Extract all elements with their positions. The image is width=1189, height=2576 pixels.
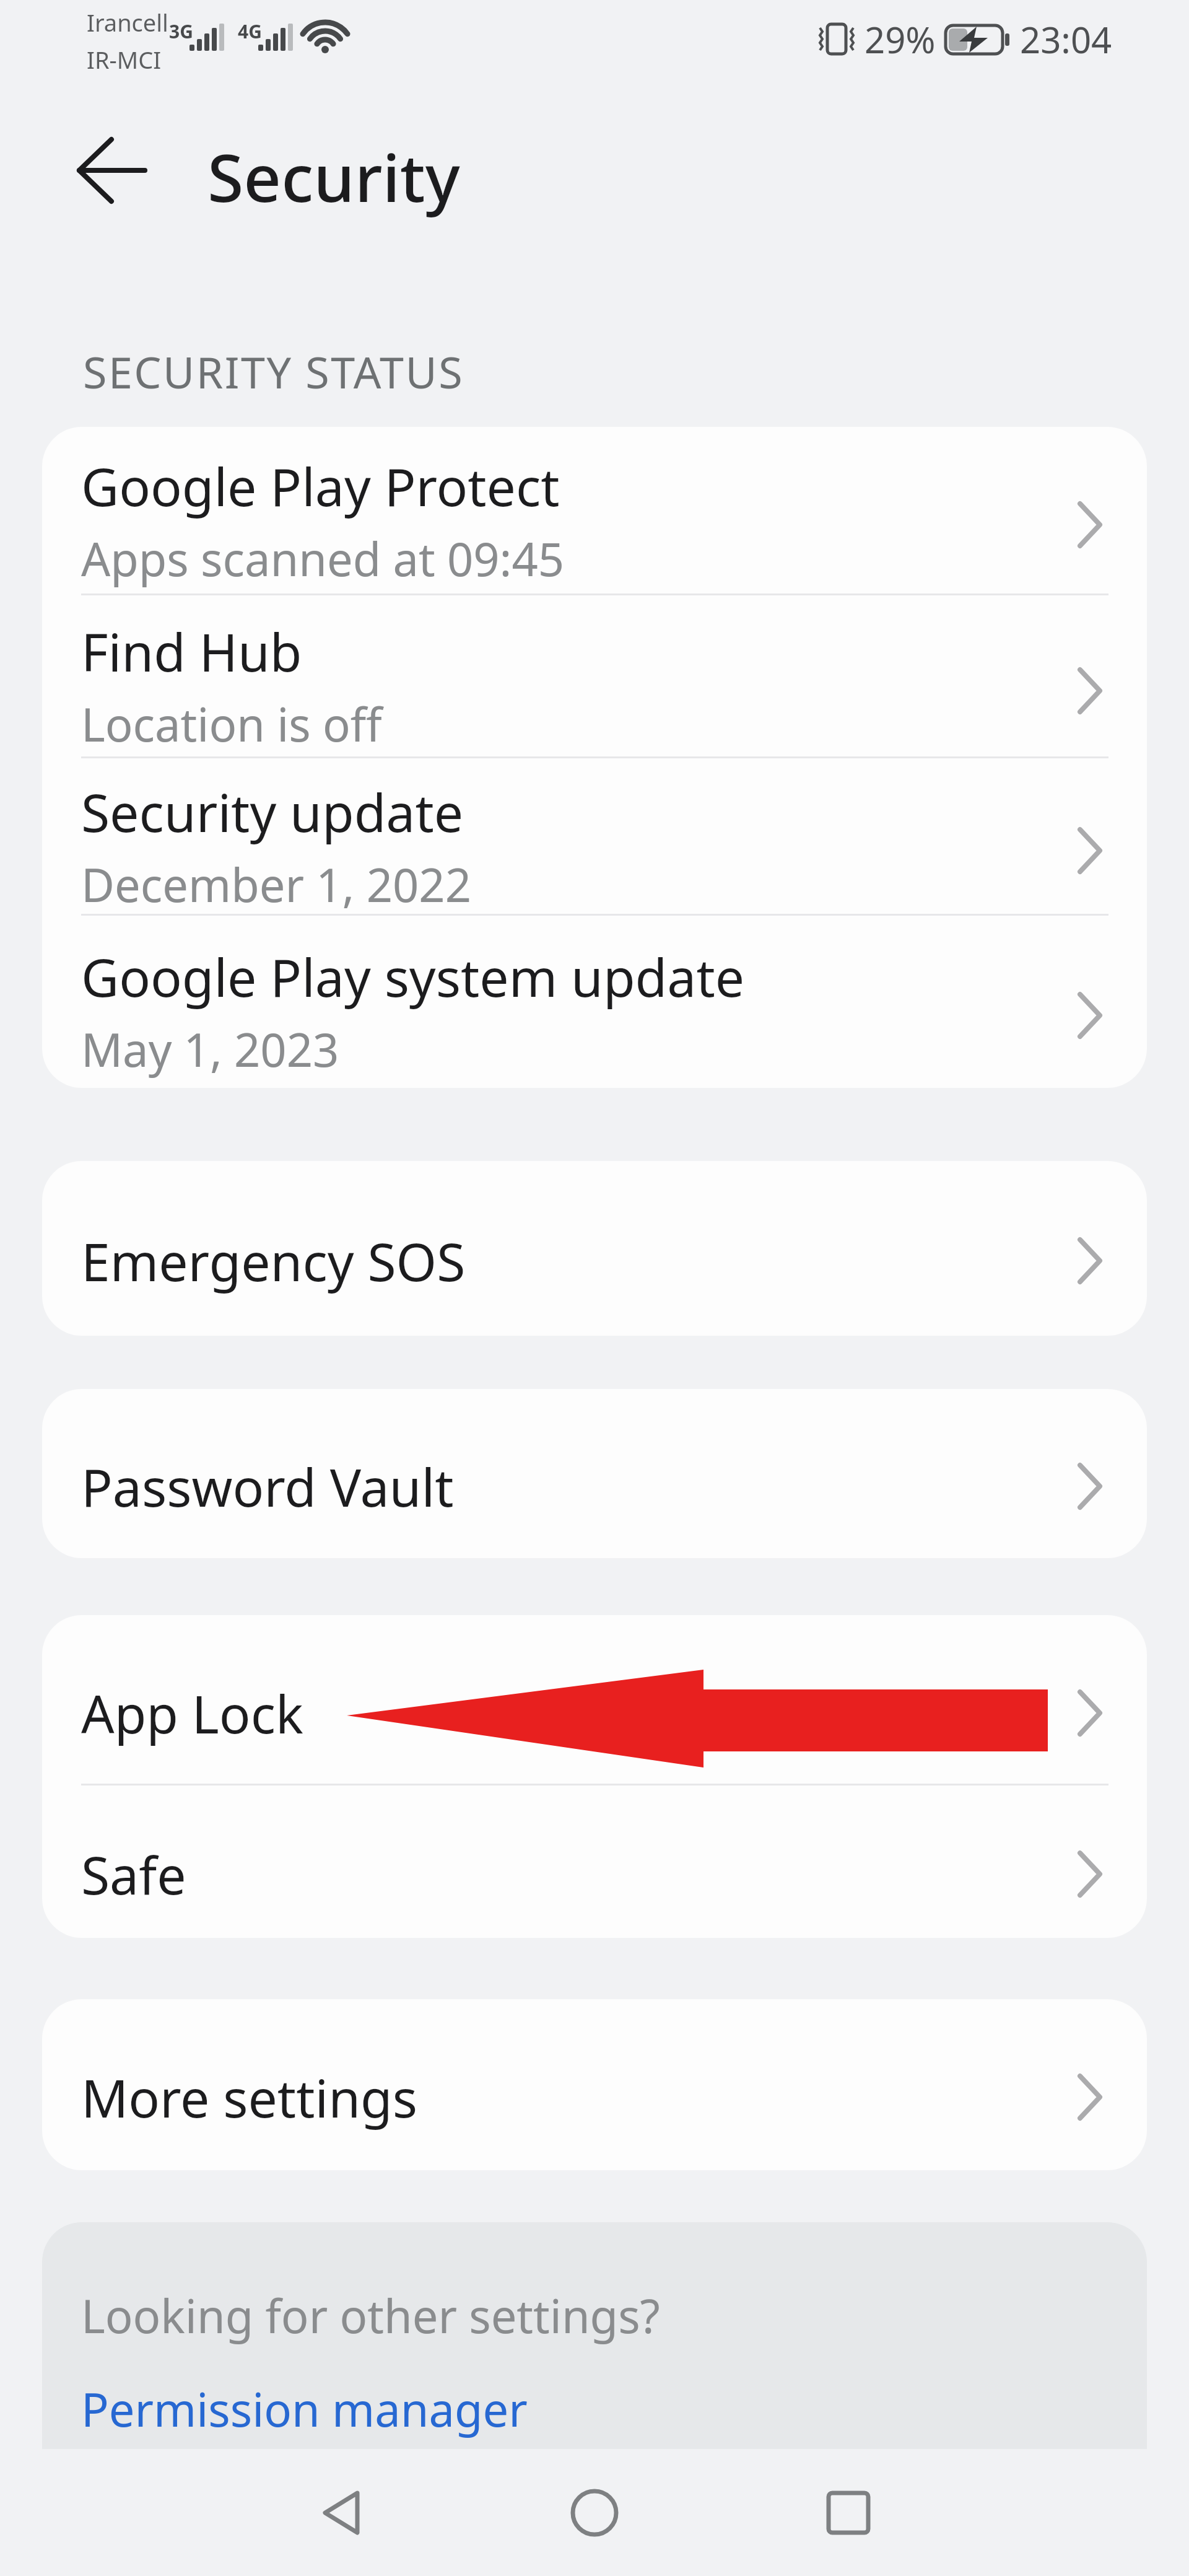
staticText: IR-MCI [87, 43, 162, 76]
button[interactable]: Safe [42, 1785, 1147, 1938]
button[interactable]: Google Play Protect [42, 427, 1147, 595]
button[interactable]: Security update [42, 758, 1147, 916]
button[interactable]: Permission manager [81, 2378, 528, 2440]
staticText: Looking for other settings? [81, 2284, 660, 2347]
staticText: Safe [81, 1839, 186, 1909]
button[interactable] [294, 2466, 387, 2559]
button[interactable] [802, 2466, 895, 2559]
staticText: Find Hub [81, 616, 302, 686]
button[interactable]: More settings [42, 1999, 1147, 2170]
button[interactable]: Google Play system update [42, 916, 1147, 1088]
staticText: 4G [238, 19, 262, 44]
staticText: 23:04 [1020, 15, 1112, 64]
staticText: More settings [81, 2062, 417, 2132]
staticText: 29% [865, 15, 936, 64]
staticText: Apps scanned at 09:45 [81, 527, 565, 590]
staticText: Google Play system update [81, 941, 745, 1012]
button[interactable] [548, 2466, 641, 2559]
staticText: Password Vault [81, 1451, 454, 1522]
button[interactable]: Find Hub [42, 595, 1147, 758]
staticText: Location is off [81, 693, 382, 755]
staticText: Google Play Protect [81, 450, 560, 521]
staticText: Security update [81, 776, 464, 847]
staticText: SECURITY STATUS [83, 342, 464, 401]
staticText: 3G [169, 19, 193, 44]
staticText: May 1, 2023 [81, 1018, 339, 1080]
staticText: Irancell [87, 6, 168, 38]
button[interactable]: Password Vault [42, 1389, 1147, 1558]
staticText: December 1, 2022 [81, 853, 471, 916]
staticText: Security [207, 132, 460, 221]
staticText: App Lock [81, 1678, 303, 1748]
button[interactable]: App Lock [42, 1615, 1147, 1785]
button[interactable]: Emergency SOS [42, 1161, 1147, 1336]
staticText: Emergency SOS [81, 1225, 466, 1296]
button[interactable] [68, 127, 155, 214]
